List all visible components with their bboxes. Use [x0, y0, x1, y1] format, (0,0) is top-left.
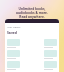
staticText: Your Library [7, 25, 21, 28]
button[interactable] [44, 61, 57, 70]
staticText: Saved [7, 30, 18, 35]
button[interactable] [7, 61, 20, 70]
button[interactable] [44, 50, 57, 59]
button[interactable] [7, 39, 20, 48]
button[interactable] [44, 39, 57, 48]
button[interactable] [7, 50, 20, 59]
staticText: Unlimited books, audiobooks & more. Read… [16, 7, 48, 19]
